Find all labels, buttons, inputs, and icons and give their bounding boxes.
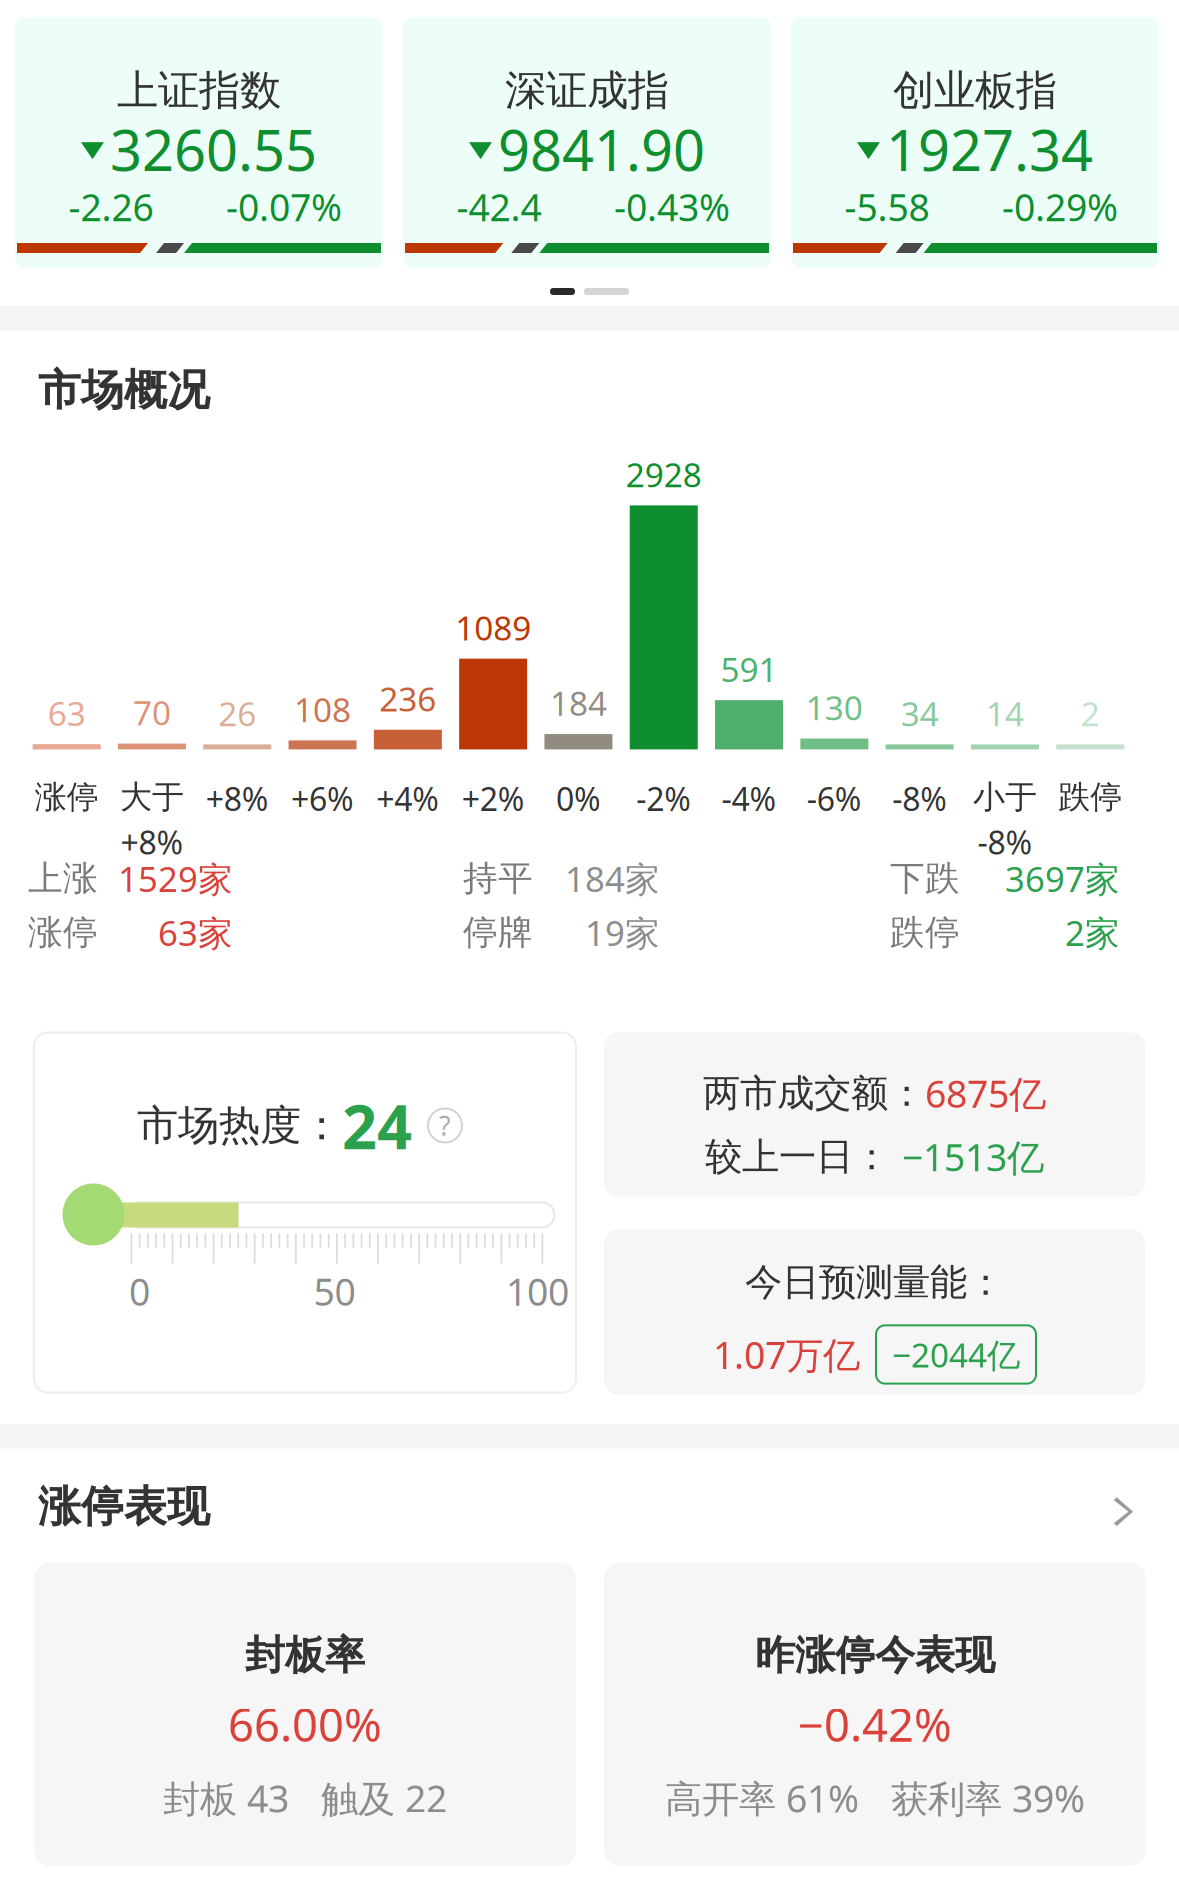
- staticText: 130: [806, 685, 863, 730]
- staticText: 100: [506, 1266, 569, 1316]
- staticText: 14: [986, 691, 1024, 735]
- staticText: -6%: [807, 777, 862, 820]
- staticText: -2%: [636, 777, 691, 820]
- staticText: 3697家: [1005, 855, 1120, 901]
- staticText: 上证指数: [117, 65, 281, 116]
- staticText: 34: [901, 691, 939, 735]
- staticText: 封板 43: [163, 1773, 289, 1823]
- staticText: 108: [294, 687, 351, 731]
- staticText: 1089: [455, 605, 531, 650]
- button[interactable]: 昨涨停今表现: [604, 1563, 1146, 1866]
- staticText: +8%: [206, 777, 269, 820]
- staticText: 50: [313, 1266, 355, 1316]
- staticText: 63: [48, 691, 86, 735]
- staticText: +8%: [120, 821, 183, 863]
- staticText: 跌停: [1058, 777, 1122, 817]
- staticText: 70: [133, 690, 171, 735]
- staticText: 获利率 39%: [891, 1773, 1085, 1823]
- staticText: 3260.55: [110, 112, 317, 186]
- staticText: +2%: [462, 777, 525, 820]
- staticText: -0.43%: [614, 182, 730, 232]
- staticText: 66.00%: [228, 1694, 382, 1754]
- staticText: -0.29%: [1002, 182, 1118, 232]
- staticText: -8%: [977, 821, 1032, 863]
- staticText: +4%: [376, 777, 439, 820]
- staticText: 6875亿: [925, 1068, 1046, 1118]
- staticText: 较上一日：: [705, 1134, 890, 1180]
- staticText: -8%: [892, 777, 947, 820]
- staticText: 大于: [120, 777, 184, 817]
- staticText: 昨涨停今表现: [755, 1631, 995, 1680]
- staticText: −2044亿: [892, 1332, 1020, 1377]
- staticText: 2928: [626, 452, 702, 496]
- staticText: 停牌: [463, 911, 533, 954]
- staticText: 持平: [463, 857, 533, 900]
- staticText: 24: [342, 1085, 412, 1166]
- staticText: 184: [550, 681, 607, 725]
- staticText: 跌停: [890, 911, 960, 954]
- staticText: 小于: [973, 777, 1037, 817]
- staticText: 上涨: [28, 857, 98, 900]
- staticText: 市场概况: [38, 364, 210, 416]
- staticText: -2.26: [68, 182, 153, 232]
- staticText: -0.07%: [226, 182, 342, 232]
- staticText: 涨停: [28, 911, 98, 954]
- staticText: -42.4: [456, 182, 541, 232]
- staticText: 19家: [585, 909, 660, 955]
- staticText: 封板率: [245, 1631, 365, 1680]
- staticText: 591: [720, 647, 777, 691]
- staticText: 涨停表现: [38, 1480, 210, 1533]
- staticText: 1.07万亿: [713, 1330, 860, 1379]
- staticText: 下跌: [890, 857, 960, 900]
- staticText: 0%: [556, 777, 601, 820]
- staticText: −0.42%: [798, 1694, 952, 1754]
- staticText: 高开率 61%: [665, 1773, 859, 1823]
- staticText: 2: [1081, 691, 1100, 735]
- staticText: -5.58: [844, 182, 929, 232]
- staticText: 236: [379, 676, 436, 721]
- button[interactable]: 深证成指: [403, 17, 771, 268]
- staticText: 9841.90: [498, 112, 705, 186]
- staticText: 2家: [1065, 909, 1120, 955]
- staticText: 0: [129, 1266, 150, 1316]
- staticText: 今日预测量能：: [745, 1259, 1004, 1305]
- staticText: 26: [218, 691, 256, 735]
- staticText: 184家: [565, 855, 660, 901]
- staticText: +6%: [291, 777, 354, 820]
- button[interactable]: 涨停表现: [0, 1448, 1179, 1563]
- staticText: 63家: [158, 909, 233, 955]
- staticText: 深证成指: [505, 65, 669, 116]
- staticText: -4%: [721, 777, 776, 820]
- staticText: ?: [439, 1108, 451, 1143]
- button[interactable]: 封板率: [34, 1563, 576, 1866]
- staticText: 创业板指: [893, 65, 1057, 116]
- staticText: 1927.34: [886, 112, 1093, 186]
- staticText: 两市成交额：: [703, 1070, 925, 1116]
- staticText: 1529家: [118, 855, 233, 901]
- staticText: −1513亿: [902, 1132, 1044, 1182]
- staticText: 触及 22: [321, 1773, 447, 1823]
- button[interactable]: 上证指数: [15, 17, 383, 268]
- staticText: 涨停: [35, 777, 99, 817]
- button[interactable]: 创业板指: [791, 17, 1159, 268]
- staticText: 市场热度：: [137, 1100, 342, 1151]
